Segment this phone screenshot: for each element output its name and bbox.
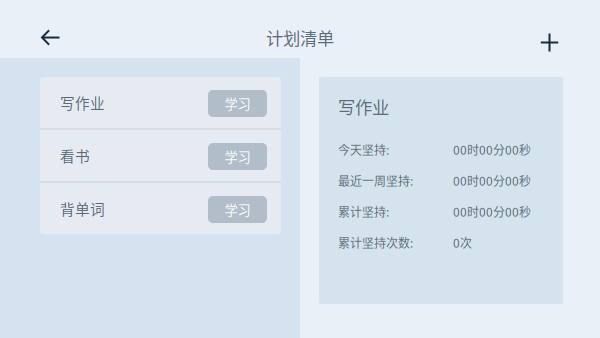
staticText: 看书 (60, 145, 90, 166)
button[interactable]: 背单词 (40, 182, 281, 234)
button[interactable]: Back (30, 17, 71, 58)
staticText: 累计坚持: (338, 203, 389, 220)
staticText: 00时00分00秒 (453, 141, 531, 158)
staticText: 00时00分00秒 (453, 172, 531, 189)
staticText: 计划清单 (266, 25, 334, 50)
button[interactable]: Add (529, 17, 570, 58)
staticText: 最近一周坚持: (338, 172, 413, 189)
staticText: 学习 (224, 200, 250, 219)
staticText: 累计坚持次数: (338, 234, 413, 251)
staticText: 背单词 (60, 198, 105, 219)
staticText: 学习 (224, 147, 250, 166)
staticText: 写作业 (338, 94, 389, 119)
staticText: 学习 (224, 94, 250, 113)
button[interactable]: 看书 (40, 129, 281, 181)
staticText: 今天坚持: (338, 141, 389, 158)
button[interactable]: 写作业 (40, 76, 281, 128)
staticText: 00时00分00秒 (453, 203, 531, 220)
staticText: 0次 (453, 234, 472, 251)
staticText: 写作业 (60, 92, 105, 113)
